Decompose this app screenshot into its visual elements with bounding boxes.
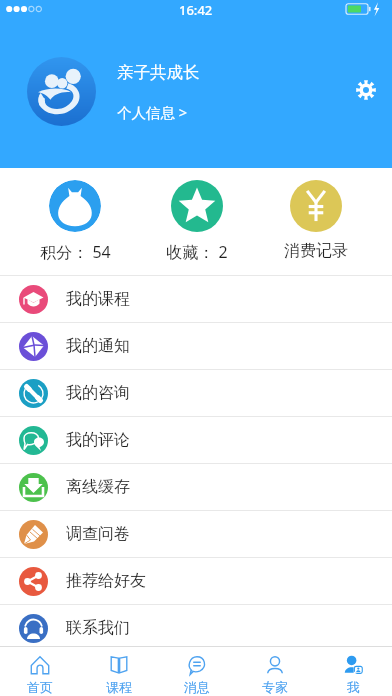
button[interactable]: 专家: [236, 647, 314, 696]
staticText: 专家: [262, 679, 288, 695]
button[interactable]: 离线缓存: [0, 464, 392, 510]
staticText: 调查问卷: [66, 524, 130, 544]
staticText: 我的通知: [66, 336, 130, 356]
staticText: 个人信息 >: [117, 102, 188, 122]
button[interactable]: 我: [314, 647, 392, 696]
staticText: 亲子共成长: [117, 62, 200, 83]
button[interactable]: 积分： 54: [15, 168, 135, 275]
button[interactable]: 我的咨询: [0, 370, 392, 416]
button[interactable]: 调查问卷: [0, 511, 392, 557]
button[interactable]: 联系我们: [0, 605, 392, 651]
staticText: 课程: [106, 679, 132, 695]
staticText: 消息: [184, 679, 210, 695]
staticText: 我的课程: [66, 289, 130, 309]
button[interactable]: 我的评论: [0, 417, 392, 463]
staticText: 收藏： 2: [166, 241, 228, 263]
button[interactable]: 消息: [158, 647, 236, 696]
staticText: 16:42: [179, 1, 213, 19]
staticText: 我的评论: [66, 430, 130, 450]
staticText: 我: [347, 679, 360, 695]
staticText: 推荐给好友: [66, 571, 146, 591]
button[interactable]: 课程: [79, 647, 158, 696]
staticText: 首页: [27, 679, 53, 695]
button[interactable]: 我的通知: [0, 323, 392, 369]
staticText: 消费记录: [284, 241, 348, 261]
staticText: 我的咨询: [66, 383, 130, 403]
button[interactable]: 推荐给好友: [0, 558, 392, 604]
button[interactable]: Settings: [348, 72, 384, 108]
staticText: 联系我们: [66, 618, 130, 638]
button[interactable]: 个人信息 >: [117, 102, 188, 122]
button[interactable]: 收藏： 2: [137, 168, 257, 275]
button[interactable]: 消费记录: [256, 168, 376, 275]
staticText: 积分： 54: [40, 241, 111, 263]
button[interactable]: 首页: [0, 647, 79, 696]
button[interactable]: 我的课程: [0, 276, 392, 322]
staticText: 离线缓存: [66, 477, 130, 497]
